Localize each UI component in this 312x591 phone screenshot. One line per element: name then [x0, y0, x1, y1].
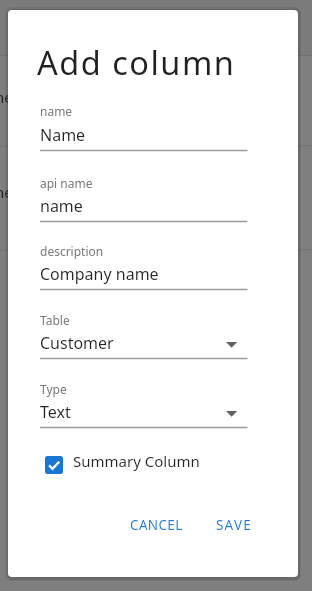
staticText: Type — [40, 381, 67, 397]
button[interactable]: SAVE — [207, 508, 262, 538]
button[interactable] — [40, 380, 248, 430]
staticText: Customer — [40, 332, 114, 354]
staticText: name — [40, 195, 83, 217]
staticText: description — [40, 243, 104, 259]
staticText: SAVE — [216, 516, 252, 534]
staticText: api name — [40, 175, 93, 191]
staticText: CANCEL — [130, 516, 183, 534]
staticText: Add column — [37, 40, 236, 84]
staticText: Table — [40, 312, 70, 328]
staticText: Text — [40, 401, 71, 423]
staticText: Company name — [40, 263, 159, 285]
button[interactable] — [40, 174, 248, 224]
button[interactable] — [40, 103, 248, 153]
button[interactable]: Summary Column — [41, 452, 211, 479]
staticText: Summary Column — [73, 451, 200, 471]
button[interactable] — [40, 311, 248, 361]
staticText: ne — [0, 182, 13, 202]
button[interactable] — [40, 242, 248, 292]
staticText: Name — [40, 124, 86, 146]
button[interactable]: CANCEL — [121, 508, 192, 538]
staticText: ne — [0, 87, 13, 107]
staticText: name — [40, 103, 73, 119]
